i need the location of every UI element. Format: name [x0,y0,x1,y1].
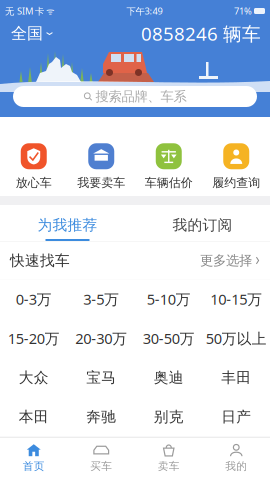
staticText: 0-3万 [16,289,52,309]
button[interactable]: 更多选择 [200,248,260,273]
staticText: 15-20万 [8,329,60,348]
staticText: 奔驰 [86,408,116,426]
button[interactable]: 丰田 [202,358,270,397]
staticText: 别克 [154,408,184,426]
button[interactable]: 搜索品牌、车系 [13,86,257,107]
staticText: 本田 [19,408,49,426]
staticText: 车辆估价 [145,175,193,190]
button[interactable]: 我的订阅 [135,205,270,241]
button[interactable]: 履约查询 [202,117,270,196]
staticText: 更多选择 [200,252,252,269]
button[interactable]: 车辆估价 [135,117,202,196]
button[interactable]: 首页 [0,437,67,479]
staticText: 卖车 [158,460,180,473]
button[interactable]: 卖车 [135,437,202,479]
button[interactable]: 3-5万 [67,279,135,319]
button[interactable]: 我的 [202,437,270,479]
button[interactable]: 买车 [67,437,135,479]
staticText: 大众 [19,369,49,387]
staticText: 奥迪 [154,369,184,387]
button[interactable]: 5-10万 [135,279,202,319]
staticText: 无 SIM 卡 [5,5,44,17]
button[interactable]: 为我推荐 [0,205,135,241]
staticText: 丰田 [221,369,251,387]
staticText: 3-5万 [83,289,119,309]
staticText: 搜索品牌、车系 [95,88,186,105]
button[interactable]: 全国 [9,21,55,46]
staticText: 我的订阅 [172,216,232,234]
button[interactable]: 日产 [202,397,270,436]
staticText: 30-50万 [143,329,195,348]
staticText: 放心车 [16,175,52,190]
button[interactable]: 10-15万 [202,279,270,319]
staticText: 为我推荐 [37,216,97,234]
button[interactable]: 别克 [135,397,202,436]
staticText: 下午3:49 [126,5,162,17]
button[interactable]: 20-30万 [67,319,135,358]
button[interactable]: 宝马 [67,358,135,397]
staticText: 履约查询 [212,175,260,190]
staticText: 10-15万 [210,289,262,309]
staticText: 20-30万 [75,329,127,348]
button[interactable]: 30-50万 [135,319,202,358]
button[interactable]: 大众 [0,358,67,397]
button[interactable]: 奥迪 [135,358,202,397]
staticText: 5-10万 [147,289,191,309]
staticText: 我的 [225,460,247,473]
staticText: 我要卖车 [77,175,125,190]
button[interactable]: 50万以上 [202,319,270,358]
button[interactable]: 15-20万 [0,319,67,358]
staticText: 0858246 辆车 [141,21,261,46]
staticText: 71% [234,5,252,17]
button[interactable]: 0-3万 [0,279,67,319]
button[interactable]: 奔驰 [67,397,135,436]
staticText: 全国 [11,24,43,43]
button[interactable]: 我要卖车 [67,117,135,196]
staticText: 宝马 [86,369,116,387]
button[interactable]: 本田 [0,397,67,436]
staticText: 买车 [90,460,112,473]
staticText: 50万以上 [206,329,267,348]
staticText: 首页 [23,460,45,473]
button[interactable]: 放心车 [0,117,67,196]
staticText: 快速找车 [10,251,70,269]
staticText: 日产 [221,408,251,426]
staticText: ᯤ [44,5,55,17]
